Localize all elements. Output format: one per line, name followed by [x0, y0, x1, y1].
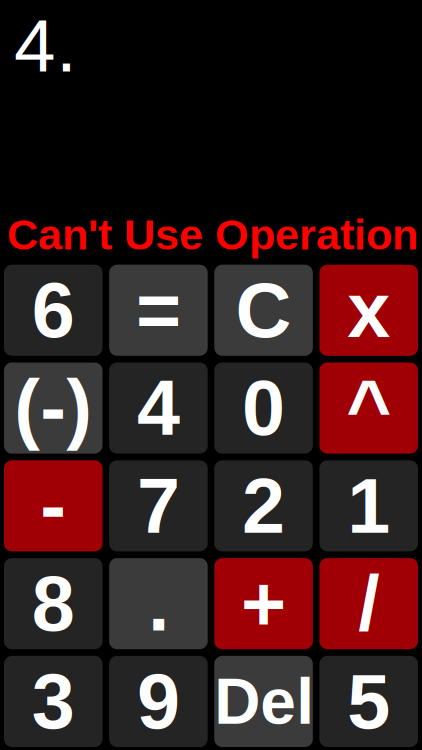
button[interactable]: 6 — [4, 265, 102, 356]
button[interactable]: Decimal point — [109, 558, 208, 649]
staticText: 4. — [14, 4, 77, 87]
staticText: + — [241, 560, 286, 647]
button[interactable]: 4 — [109, 362, 208, 454]
button[interactable]: Clear — [214, 265, 313, 356]
button[interactable]: Divide — [319, 558, 418, 649]
staticText: C — [236, 267, 292, 353]
staticText: 5 — [347, 658, 390, 745]
button[interactable]: Negate — [4, 362, 102, 454]
button[interactable]: 8 — [4, 558, 102, 649]
staticText: / — [358, 560, 379, 647]
staticText: Can't Use Operation — [7, 210, 418, 259]
staticText: 6 — [32, 267, 75, 353]
button[interactable]: 9 — [109, 656, 208, 747]
button[interactable]: Plus — [214, 558, 313, 649]
button[interactable]: Equals — [109, 265, 208, 356]
staticText: = — [136, 267, 181, 353]
button[interactable]: 1 — [319, 460, 418, 551]
staticText: 8 — [32, 560, 75, 647]
staticText: . — [148, 560, 169, 647]
staticText: ^ — [346, 365, 391, 451]
staticText: 7 — [137, 463, 180, 549]
staticText: 9 — [137, 658, 180, 745]
staticText: 0 — [242, 365, 285, 451]
staticText: 4 — [137, 365, 180, 451]
button[interactable]: Delete — [214, 656, 313, 747]
button[interactable]: 2 — [214, 460, 313, 551]
button[interactable]: 3 — [4, 656, 102, 747]
button[interactable]: 5 — [319, 656, 418, 747]
staticText: 1 — [347, 463, 390, 549]
staticText: Del — [214, 666, 314, 737]
button[interactable]: Multiply — [319, 265, 418, 356]
button[interactable]: 0 — [214, 362, 313, 454]
staticText: 2 — [242, 463, 285, 549]
staticText: (-) — [14, 365, 92, 451]
staticText: - — [40, 463, 66, 549]
button[interactable]: Power — [319, 362, 418, 454]
button[interactable]: Minus — [4, 460, 102, 551]
staticText: 3 — [32, 658, 75, 745]
staticText: x — [347, 267, 390, 353]
button[interactable]: 7 — [109, 460, 208, 551]
